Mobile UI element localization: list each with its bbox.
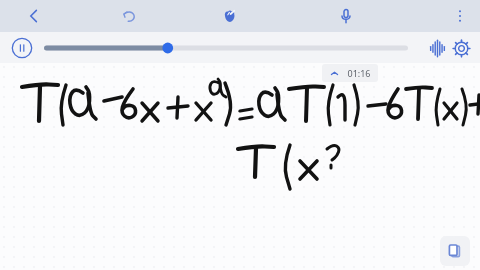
button[interactable]: Pages <box>440 236 470 266</box>
button[interactable]: Audio waveform <box>425 36 449 60</box>
button[interactable]: More options <box>448 4 472 28</box>
button[interactable]: Pen tool <box>216 3 242 29</box>
staticText: 01:16 <box>347 67 371 79</box>
button[interactable]: Pause <box>9 35 35 61</box>
button[interactable]: Back <box>22 4 46 28</box>
button[interactable]: 01:16 <box>322 64 378 82</box>
button[interactable]: Undo <box>116 3 142 29</box>
button[interactable]: Microphone <box>333 3 359 29</box>
button[interactable]: Settings <box>449 36 473 60</box>
button[interactable]: Seek bar <box>44 38 408 58</box>
